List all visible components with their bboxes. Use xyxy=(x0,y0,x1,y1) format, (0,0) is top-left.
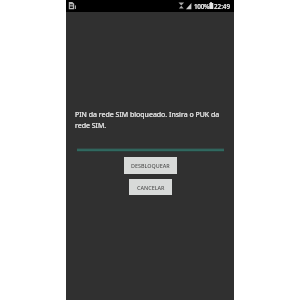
staticText: CANCELAR xyxy=(137,184,165,191)
staticText: DESBLOQUEAR xyxy=(131,162,170,169)
button[interactable]: CANCELAR xyxy=(129,179,172,195)
button[interactable]: DESBLOQUEAR xyxy=(124,157,177,174)
staticText: 22:49 xyxy=(214,2,230,11)
staticText: PIN da rede SIM bloqueado. Insira o PUK … xyxy=(75,110,220,131)
staticText: 100% xyxy=(194,2,210,11)
